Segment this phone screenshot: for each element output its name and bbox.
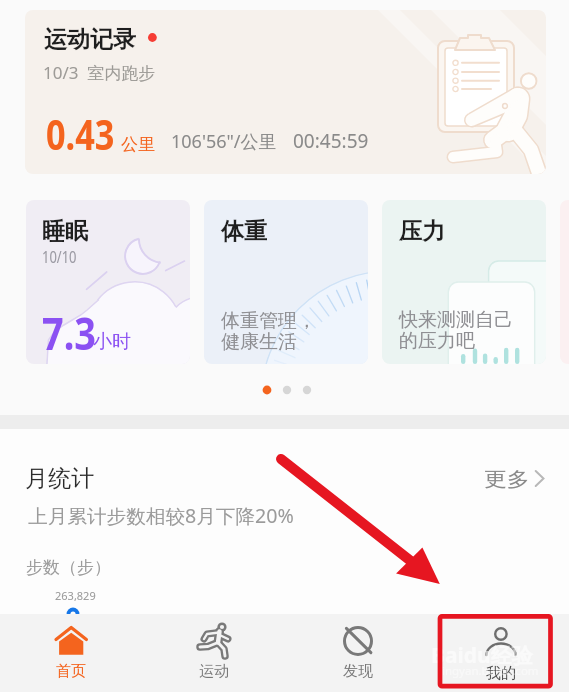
staticText: 更多 (484, 467, 530, 492)
staticText: 我的 (486, 664, 516, 683)
staticText: 7.3 (42, 303, 96, 363)
staticText: 106'56"/公里 (171, 129, 277, 154)
button[interactable]: 睡眠 (26, 200, 190, 364)
staticText: 首页 (56, 662, 86, 681)
staticText: 快来测测自己 的压力吧 (399, 308, 513, 353)
staticText: 体重 (221, 217, 267, 246)
staticText: 运动 (199, 662, 229, 681)
staticText: 月统计 (25, 464, 94, 493)
staticText: 步数（步） (26, 557, 111, 578)
button[interactable]: 首页 (0, 614, 142, 692)
staticText: 运动记录 (44, 25, 136, 54)
staticText: 263,829 (55, 588, 96, 603)
button[interactable]: 压力 (382, 200, 546, 364)
staticText: 压力 (399, 217, 445, 246)
staticText: 0.43 (46, 106, 114, 162)
button[interactable]: 体重 (204, 200, 368, 364)
staticText: 小时 (93, 330, 131, 354)
button[interactable]: 我的 (426, 614, 569, 692)
button[interactable]: 发现 (284, 614, 426, 692)
staticText: jingyan.baidu.com (439, 663, 539, 679)
staticText: 体重管理， 健康生活 (221, 309, 316, 354)
staticText: 发现 (343, 662, 373, 681)
button[interactable]: 运动 (142, 614, 284, 692)
staticText: 10/3 室内跑步 (43, 61, 156, 84)
button[interactable]: 更多 (470, 460, 550, 494)
staticText: 上月累计步数相较8月下降20% (28, 503, 294, 529)
staticText: 10/10 (42, 246, 77, 268)
button[interactable]: 运动记录 (25, 10, 546, 174)
staticText: 睡眠 (42, 217, 88, 246)
staticText: 公里 (121, 134, 155, 155)
staticText: 00:45:59 (293, 128, 369, 154)
staticText: Baidu经验 (431, 641, 533, 670)
